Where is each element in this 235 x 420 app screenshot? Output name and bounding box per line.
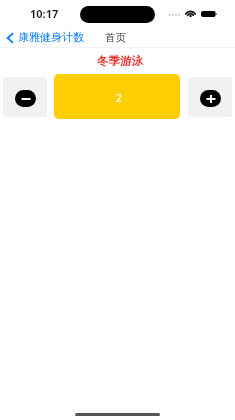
button[interactable]: 康雅健身计数	[6, 29, 84, 43]
staticText: 康雅健身计数	[18, 30, 84, 44]
staticText: 2	[116, 91, 122, 105]
button[interactable]: Decrease	[3, 77, 47, 117]
staticText: 10:17	[30, 6, 59, 21]
button[interactable]: Increase	[188, 77, 232, 117]
button[interactable]: 2	[54, 74, 180, 119]
staticText: 首页	[105, 31, 126, 44]
staticText: 冬季游泳	[97, 54, 143, 68]
